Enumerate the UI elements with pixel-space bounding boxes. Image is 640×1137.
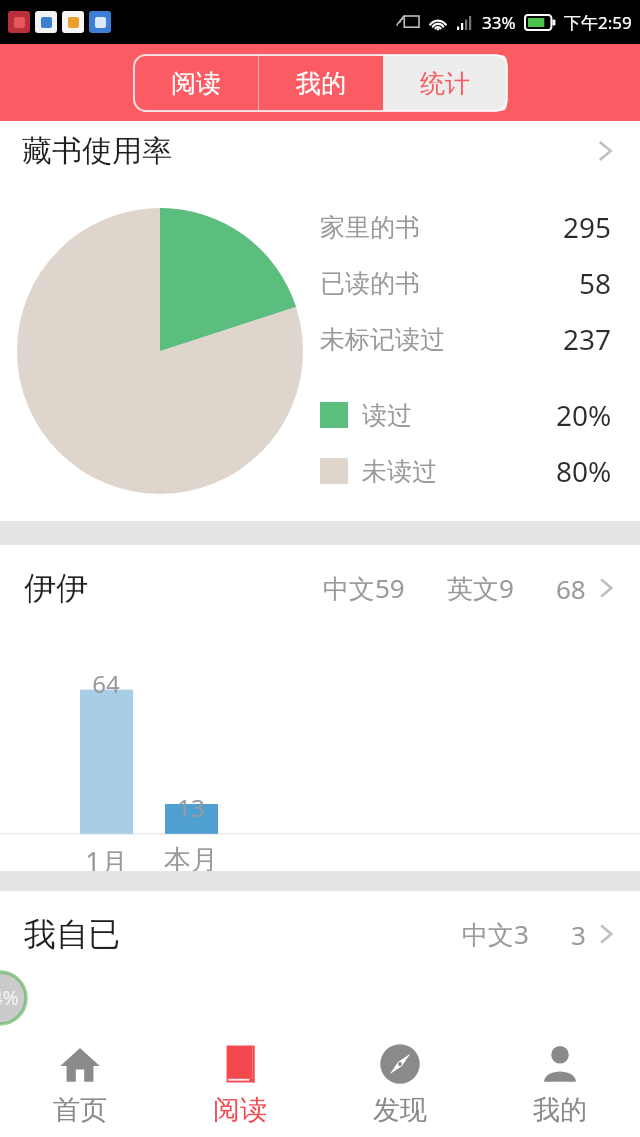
button[interactable]: 我的 [480,1032,640,1137]
staticText: 英文9 [447,570,514,606]
staticText: 我的 [533,1093,587,1127]
staticText: 已读的书 [320,268,420,299]
staticText: 藏书使用率 [22,132,172,170]
button[interactable]: 统计 [383,55,507,111]
staticText: 我的 [296,68,346,99]
staticText: 80% [556,452,612,490]
staticText: 13 [177,791,205,824]
button[interactable]: 伊伊 [24,545,618,631]
staticText: 发现 [373,1093,427,1127]
staticText: 读过 [362,400,412,431]
staticText: 首页 [53,1093,107,1127]
staticText: 我自已 [24,914,120,954]
staticText: 阅读 [171,68,221,99]
staticText: 本月 [164,843,218,877]
staticText: 未标记读过 [320,324,445,355]
button[interactable]: 我的 [259,55,383,111]
staticText: 中文3 [462,916,529,952]
button[interactable]: 阅读 [134,55,258,111]
button[interactable]: 我自已 [24,891,618,977]
button[interactable]: 藏书使用率 [22,121,618,181]
button[interactable]: 阅读 [160,1032,320,1137]
staticText: 中文59 [323,570,405,606]
staticText: 统计 [420,68,470,99]
staticText: 伊伊 [24,568,88,608]
staticText: 阅读 [213,1093,267,1127]
staticText: 下午2:59 [564,11,632,34]
staticText: 未读过 [362,456,437,487]
staticText: 20% [556,396,612,434]
staticText: 295 [563,208,612,246]
staticText: 64% [0,985,19,1011]
button[interactable]: 首页 [0,1032,160,1137]
staticText: 68 [556,571,586,606]
staticText: 3 [571,917,586,952]
button[interactable]: 发现 [320,1032,480,1137]
staticText: 64 [92,667,120,700]
staticText: 家里的书 [320,212,420,243]
staticText: 1月 [85,843,128,880]
staticText: 58 [579,264,612,302]
staticText: 33% [482,11,516,34]
staticText: 237 [563,320,612,358]
